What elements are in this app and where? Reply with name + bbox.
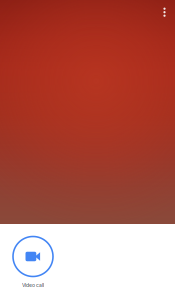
button[interactable]: More options [154, 2, 175, 23]
staticText: Video call [22, 282, 44, 288]
button[interactable]: Video call [5, 236, 61, 288]
